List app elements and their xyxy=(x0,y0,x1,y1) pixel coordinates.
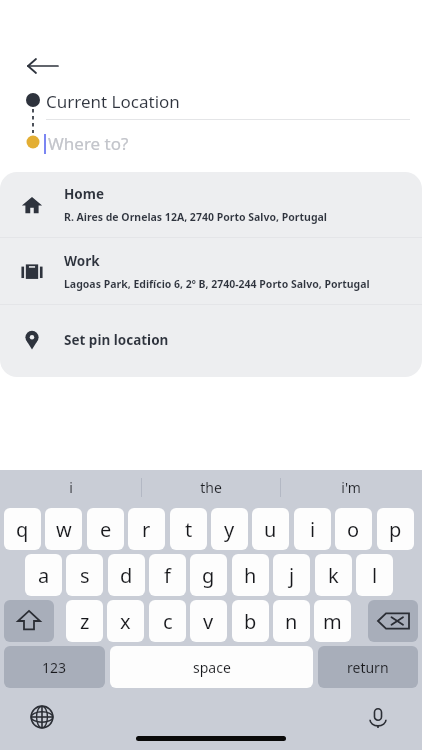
staticText: p xyxy=(389,516,402,543)
button[interactable]: Backspace xyxy=(368,600,418,642)
staticText: a xyxy=(38,562,50,589)
button[interactable]: Current Location xyxy=(46,86,410,116)
staticText: z xyxy=(80,608,90,635)
staticText: t xyxy=(185,516,193,543)
staticText: v xyxy=(203,608,214,635)
staticText: return xyxy=(347,658,389,677)
button[interactable]: n xyxy=(273,600,310,642)
button[interactable]: t xyxy=(170,508,207,550)
staticText: c xyxy=(163,608,173,635)
button[interactable]: z xyxy=(66,600,103,642)
staticText: Set pin location xyxy=(64,331,169,349)
button[interactable]: space xyxy=(110,646,313,688)
staticText: u xyxy=(264,516,277,543)
button[interactable]: the xyxy=(151,470,271,505)
staticText: Where to? xyxy=(48,132,129,155)
button[interactable]: u xyxy=(252,508,289,550)
button[interactable]: a xyxy=(25,554,62,596)
staticText: b xyxy=(244,608,257,635)
staticText: j xyxy=(289,562,295,589)
staticText: 123 xyxy=(42,658,67,677)
staticText: k xyxy=(328,562,339,589)
button[interactable]: o xyxy=(335,508,372,550)
button[interactable]: e xyxy=(87,508,124,550)
button[interactable]: Where to? xyxy=(44,128,410,158)
button[interactable]: m xyxy=(314,600,351,642)
staticText: Home xyxy=(64,185,104,203)
button[interactable]: Back xyxy=(18,50,62,82)
staticText: the xyxy=(200,478,222,497)
staticText: n xyxy=(285,608,298,635)
button[interactable]: Set pin location xyxy=(0,305,422,375)
staticText: q xyxy=(16,516,29,543)
button[interactable]: s xyxy=(66,554,103,596)
button[interactable]: x xyxy=(107,600,144,642)
button[interactable]: Voice input xyxy=(362,701,394,733)
button[interactable]: w xyxy=(45,508,82,550)
button[interactable]: y xyxy=(211,508,248,550)
button[interactable]: Shift xyxy=(4,600,54,642)
staticText: i xyxy=(310,516,316,543)
staticText: o xyxy=(347,516,360,543)
button[interactable]: g xyxy=(190,554,227,596)
button[interactable]: l xyxy=(356,554,393,596)
staticText: l xyxy=(372,562,378,589)
button[interactable]: i'm xyxy=(291,470,411,505)
button[interactable]: k xyxy=(315,554,352,596)
button[interactable]: j xyxy=(273,554,310,596)
staticText: f xyxy=(164,562,171,589)
button[interactable]: v xyxy=(190,600,227,642)
button[interactable]: h xyxy=(232,554,269,596)
staticText: r xyxy=(142,516,151,543)
button[interactable]: return xyxy=(318,646,418,688)
staticText: h xyxy=(244,562,257,589)
button[interactable]: r xyxy=(128,508,165,550)
button[interactable]: d xyxy=(108,554,145,596)
button[interactable]: b xyxy=(232,600,269,642)
staticText: Current Location xyxy=(46,90,180,113)
button[interactable]: i xyxy=(11,470,131,505)
button[interactable]: c xyxy=(149,600,186,642)
staticText: Lagoas Park, Edifício 6, 2º B, 2740-244 … xyxy=(64,277,370,291)
button[interactable]: p xyxy=(377,508,414,550)
staticText: i xyxy=(69,478,73,497)
staticText: g xyxy=(202,562,215,589)
staticText: i'm xyxy=(341,478,361,497)
button[interactable]: Work xyxy=(0,238,422,304)
button[interactable]: Home xyxy=(0,172,422,237)
staticText: w xyxy=(56,516,72,543)
button[interactable]: Change keyboard xyxy=(26,701,58,733)
staticText: s xyxy=(80,562,90,589)
staticText: m xyxy=(323,608,342,635)
staticText: Work xyxy=(64,252,100,270)
staticText: x xyxy=(120,608,131,635)
button[interactable]: i xyxy=(294,508,331,550)
staticText: R. Aires de Ornelas 12A, 2740 Porto Salv… xyxy=(64,210,327,224)
staticText: e xyxy=(100,516,112,543)
button[interactable]: q xyxy=(4,508,41,550)
button[interactable]: f xyxy=(149,554,186,596)
staticText: space xyxy=(193,658,231,677)
staticText: d xyxy=(120,562,133,589)
staticText: y xyxy=(224,516,235,543)
button[interactable]: 123 xyxy=(4,646,105,688)
